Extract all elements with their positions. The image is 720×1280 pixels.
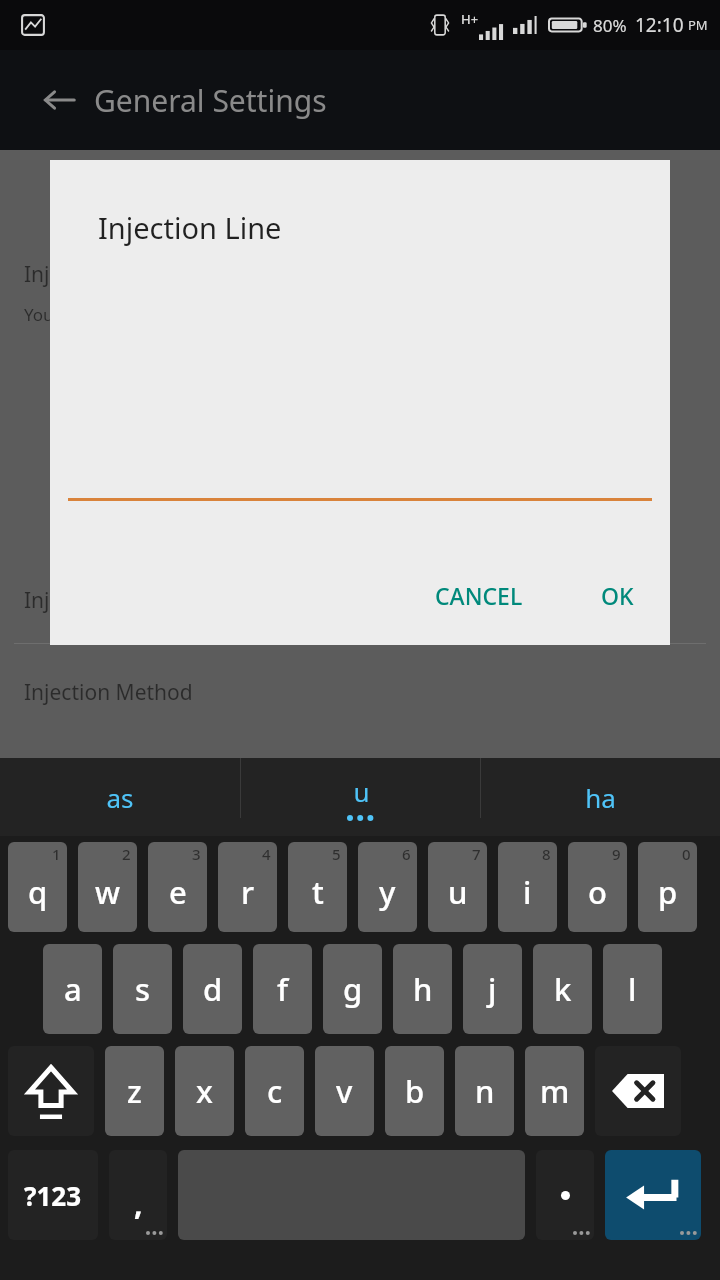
staticText: m bbox=[540, 1070, 570, 1112]
staticText: 8 bbox=[542, 844, 551, 864]
button[interactable]: 3 bbox=[148, 842, 207, 932]
staticText: Injection Line bbox=[98, 208, 282, 247]
button[interactable]: Shift bbox=[8, 1046, 94, 1136]
staticText: t bbox=[312, 871, 324, 913]
button[interactable]: 5 bbox=[288, 842, 347, 932]
button[interactable]: x bbox=[175, 1046, 234, 1136]
staticText: k bbox=[554, 968, 572, 1010]
button[interactable]: Enter bbox=[605, 1150, 701, 1240]
staticText: v bbox=[336, 1070, 353, 1112]
button[interactable]: j bbox=[463, 944, 522, 1034]
button[interactable]: n bbox=[455, 1046, 514, 1136]
button[interactable]: , bbox=[109, 1150, 167, 1240]
staticText: x bbox=[196, 1070, 213, 1112]
button[interactable] bbox=[536, 1150, 594, 1240]
button[interactable]: a bbox=[43, 944, 102, 1034]
button[interactable]: c bbox=[245, 1046, 304, 1136]
staticText: Injection Host for this to work bbox=[24, 586, 318, 615]
staticText: u bbox=[353, 774, 370, 809]
button[interactable]: l bbox=[603, 944, 662, 1034]
button[interactable]: Back bbox=[36, 76, 84, 124]
staticText: d bbox=[203, 968, 223, 1010]
staticText: f bbox=[277, 968, 289, 1010]
staticText: s bbox=[135, 968, 151, 1010]
staticText: 9 bbox=[612, 844, 621, 864]
button[interactable]: as bbox=[0, 758, 240, 836]
button[interactable]: 7 bbox=[428, 842, 487, 932]
staticText: i bbox=[523, 871, 532, 913]
staticText: H+ bbox=[461, 10, 479, 28]
staticText: CANCEL bbox=[435, 580, 523, 611]
staticText: h bbox=[413, 968, 433, 1010]
staticText: y bbox=[379, 871, 396, 913]
staticText: Injection Method bbox=[24, 678, 193, 707]
button[interactable]: 0 bbox=[638, 842, 697, 932]
staticText: o bbox=[588, 871, 607, 913]
staticText: c bbox=[267, 1070, 283, 1112]
staticText: u bbox=[448, 871, 468, 913]
staticText: 7 bbox=[472, 844, 481, 864]
staticText: 2 bbox=[122, 844, 131, 864]
button[interactable]: z bbox=[105, 1046, 164, 1136]
button[interactable]: m bbox=[525, 1046, 584, 1136]
staticText: w bbox=[95, 871, 121, 913]
staticText: l bbox=[628, 968, 637, 1010]
button[interactable]: ?123 bbox=[8, 1150, 98, 1240]
staticText: n bbox=[475, 1070, 495, 1112]
staticText: 1 bbox=[52, 844, 61, 864]
staticText: , bbox=[134, 1183, 143, 1224]
button[interactable]: 9 bbox=[568, 842, 627, 932]
staticText: 6 bbox=[402, 844, 411, 864]
button[interactable]: s bbox=[113, 944, 172, 1034]
button[interactable]: f bbox=[253, 944, 312, 1034]
button[interactable]: 6 bbox=[358, 842, 417, 932]
staticText: PM bbox=[688, 16, 708, 34]
staticText: p bbox=[658, 871, 678, 913]
staticText: You must enable the bbox=[24, 303, 188, 326]
button[interactable]: 8 bbox=[498, 842, 557, 932]
staticText: OK bbox=[601, 580, 634, 611]
staticText: 3 bbox=[192, 844, 201, 864]
staticText: Injection Host bbox=[24, 260, 162, 289]
button[interactable]: d bbox=[183, 944, 242, 1034]
staticText: 5 bbox=[332, 844, 341, 864]
button[interactable]: u bbox=[241, 758, 480, 836]
button[interactable]: k bbox=[533, 944, 592, 1034]
staticText: b bbox=[405, 1070, 425, 1112]
button[interactable]: ha bbox=[481, 758, 720, 836]
staticText: 12:10 bbox=[635, 12, 684, 38]
button[interactable]: CANCEL bbox=[417, 568, 541, 623]
staticText: a bbox=[64, 968, 82, 1010]
button[interactable]: g bbox=[323, 944, 382, 1034]
button[interactable]: 1 bbox=[8, 842, 67, 932]
button[interactable]: b bbox=[385, 1046, 444, 1136]
button[interactable]: h bbox=[393, 944, 452, 1034]
button[interactable]: OK bbox=[583, 568, 652, 623]
staticText: q bbox=[28, 871, 48, 913]
staticText: as bbox=[106, 780, 134, 815]
staticText: j bbox=[488, 968, 497, 1010]
staticText: r bbox=[241, 871, 255, 913]
staticText: e bbox=[169, 871, 187, 913]
button[interactable]: Backspace bbox=[595, 1046, 681, 1136]
button[interactable]: 4 bbox=[218, 842, 277, 932]
staticText: z bbox=[127, 1070, 142, 1112]
staticText: 80% bbox=[593, 14, 627, 37]
staticText: ?123 bbox=[24, 1178, 82, 1213]
staticText: 0 bbox=[682, 844, 691, 864]
staticText: General Settings bbox=[94, 80, 327, 121]
button[interactable]: v bbox=[315, 1046, 374, 1136]
staticText: 4 bbox=[262, 844, 271, 864]
button[interactable]: 2 bbox=[78, 842, 137, 932]
staticText: ha bbox=[585, 780, 616, 815]
staticText: g bbox=[343, 968, 363, 1010]
